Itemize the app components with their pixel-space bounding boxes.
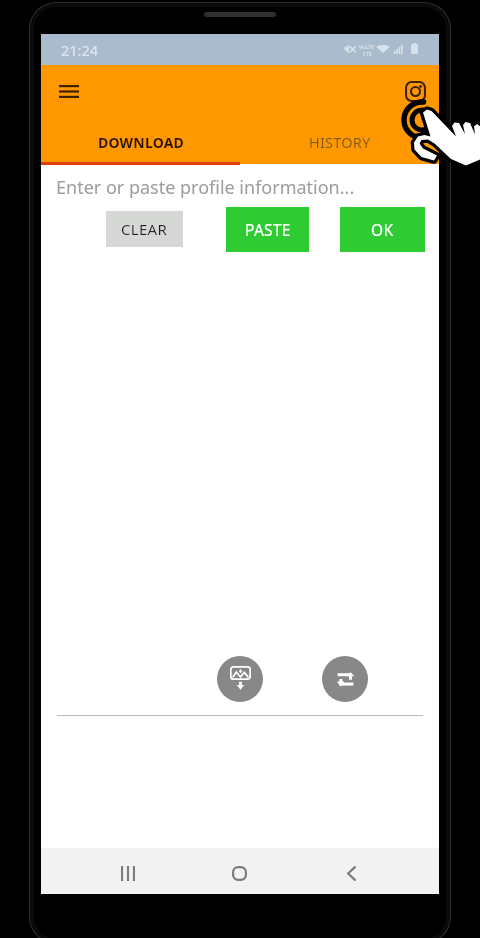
button[interactable]: HISTORY [240, 117, 439, 165]
button[interactable]: OK [340, 207, 425, 252]
staticText: LTE [363, 50, 372, 57]
button[interactable]: CLEAR [106, 211, 183, 247]
staticText: VoLTE [359, 43, 375, 50]
staticText: 21:24 [61, 40, 99, 60]
staticText: Enter or paste profile information... [56, 175, 355, 200]
button[interactable]: DOWNLOAD [41, 117, 240, 165]
button[interactable]: Download image [217, 656, 263, 702]
button[interactable]: Home [222, 856, 256, 890]
button[interactable]: Recent apps [111, 856, 145, 890]
button[interactable]: Repost [322, 656, 368, 702]
button[interactable]: Back [334, 856, 368, 890]
staticText: PASTE [245, 219, 291, 240]
staticText: CLEAR [121, 219, 168, 239]
button[interactable]: PASTE [226, 207, 309, 252]
button[interactable]: Instagram [394, 70, 436, 112]
staticText: OK [371, 219, 394, 240]
staticText: DOWNLOAD [98, 133, 184, 152]
button[interactable]: Menu [48, 70, 90, 112]
staticText: HISTORY [309, 132, 371, 152]
